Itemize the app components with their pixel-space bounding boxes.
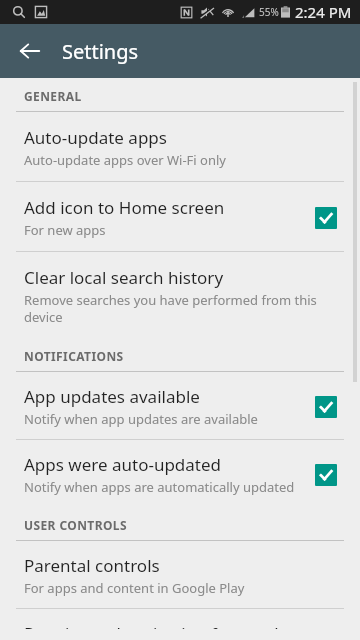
staticText: Notify when app updates are available (24, 410, 258, 428)
staticText: App updates available (24, 385, 200, 408)
staticText: For apps and content in Google Play (24, 579, 245, 597)
staticText: For new apps (24, 221, 106, 239)
staticText: Add icon to Home screen (24, 196, 225, 219)
button[interactable]: Apps were auto-updated (308, 457, 344, 493)
button[interactable]: Back (8, 29, 52, 73)
staticText: Auto-update apps (24, 126, 167, 149)
staticText: Settings (62, 38, 139, 65)
button[interactable]: Clear local search history (0, 252, 360, 338)
staticText: Clear local search history (24, 266, 224, 289)
button[interactable]: Parental controls (0, 541, 360, 608)
staticText: Notify when apps are automatically updat… (24, 478, 295, 496)
staticText: Auto-update apps over Wi-Fi only (24, 151, 226, 169)
staticText: NOTIFICATIONS (24, 348, 124, 364)
staticText: 55% (259, 5, 279, 19)
button[interactable]: App updates available (0, 372, 360, 439)
staticText: Parental controls (24, 554, 160, 577)
button[interactable]: Require authentication for purchases (0, 609, 360, 640)
button[interactable]: App updates available (308, 389, 344, 425)
staticText: Remove searches you have performed from … (24, 291, 344, 326)
button[interactable]: Apps were auto-updated (0, 440, 360, 507)
staticText: 2:24 PM (295, 2, 352, 22)
button[interactable]: Add icon to Home screen (0, 182, 360, 251)
staticText: Require authentication for purchases (24, 622, 321, 629)
staticText: USER CONTROLS (24, 517, 127, 533)
staticText: GENERAL (24, 88, 82, 104)
button[interactable]: Add icon to Home screen (308, 200, 344, 236)
staticText: Apps were auto-updated (24, 453, 222, 476)
button[interactable]: Auto-update apps (0, 112, 360, 181)
